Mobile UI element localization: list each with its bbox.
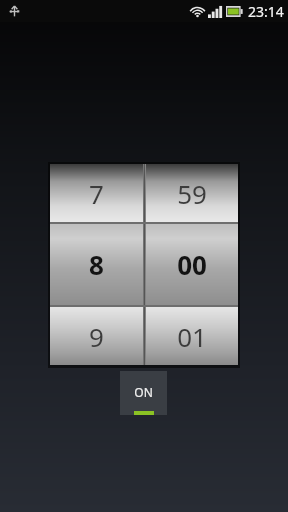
button[interactable]: 7 (50, 164, 143, 222)
staticText: 00 (177, 247, 207, 282)
button[interactable]: 00 (146, 224, 238, 305)
staticText: ON (134, 384, 153, 400)
staticText: 9 (89, 319, 104, 354)
button[interactable]: 9 (50, 307, 143, 365)
staticText: 7 (89, 176, 104, 211)
other: USB connected (8, 4, 21, 17)
button[interactable]: 59 (146, 164, 238, 222)
button[interactable]: 8 (50, 224, 143, 305)
other: Cellular signal (208, 6, 223, 18)
other: Wi-Fi (190, 5, 205, 18)
staticText: 23:14 (248, 2, 284, 21)
staticText: 01 (177, 319, 207, 354)
button[interactable]: 01 (146, 307, 238, 365)
other: Battery charging (226, 6, 243, 17)
staticText: 8 (89, 247, 104, 282)
staticText: 59 (177, 176, 207, 211)
button[interactable]: ON (120, 371, 167, 415)
